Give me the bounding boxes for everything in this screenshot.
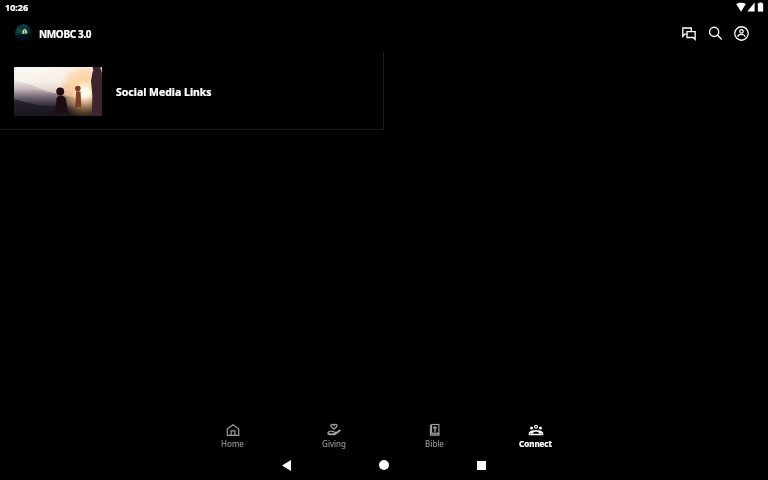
- staticText: Home: [221, 438, 244, 449]
- button[interactable]: Home: [182, 414, 283, 450]
- button[interactable]: Account: [727, 19, 755, 47]
- button[interactable]: Search: [701, 19, 729, 47]
- button[interactable]: Giving: [283, 414, 384, 450]
- staticText: Connect: [519, 438, 552, 449]
- button[interactable]: Connect: [485, 414, 586, 450]
- button[interactable]: Home: [372, 453, 396, 477]
- button[interactable]: Bible: [384, 414, 485, 450]
- button[interactable]: Back: [274, 453, 298, 477]
- staticText: Bible: [425, 438, 444, 449]
- staticText: 10:26: [5, 1, 29, 13]
- button[interactable]: Social Media Links: [0, 51, 384, 130]
- button[interactable]: Messages: [675, 19, 703, 47]
- button[interactable]: Recents: [469, 453, 493, 477]
- staticText: Social Media Links: [116, 85, 212, 99]
- staticText: NMOBC 3.0: [39, 27, 92, 41]
- staticText: Giving: [322, 438, 346, 449]
